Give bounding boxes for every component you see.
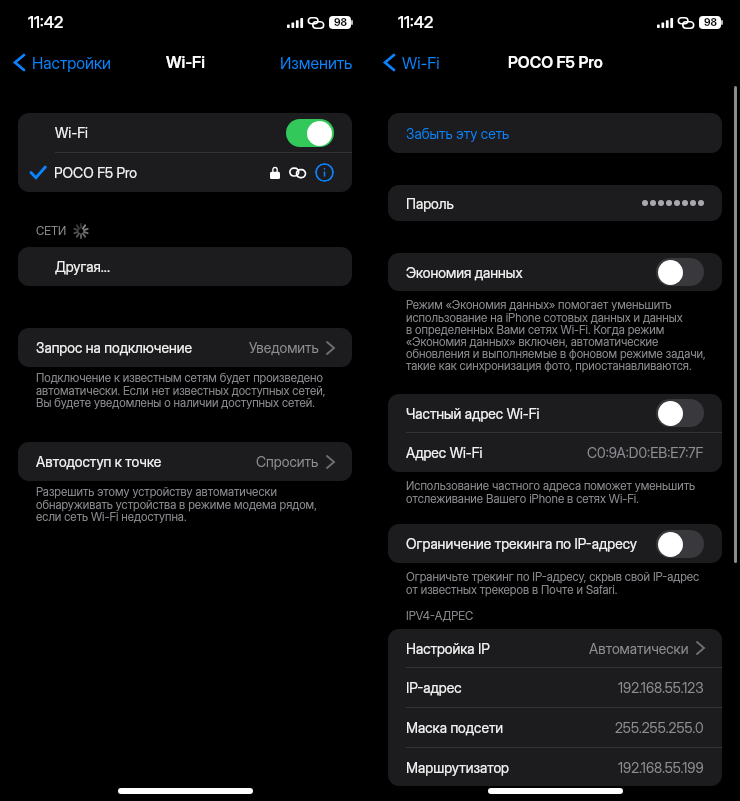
staticText: Частный адрес Wi-Fi bbox=[406, 405, 540, 422]
button[interactable]: Пароль bbox=[388, 185, 722, 221]
staticText: Ограничьте трекинг по IP-адресу, скрыв с… bbox=[406, 570, 718, 596]
staticText: Wi-Fi bbox=[55, 124, 88, 141]
button[interactable]: Маска подсети bbox=[388, 708, 722, 747]
button[interactable]: Wi-Fi bbox=[18, 113, 352, 152]
staticText: Подключение к известным сетям будет прои… bbox=[36, 371, 348, 409]
staticText: Запрос на подключение bbox=[36, 339, 192, 356]
staticText: Wi-Fi bbox=[402, 53, 440, 72]
button[interactable]: Toggle off bbox=[656, 530, 704, 558]
staticText: 192.168.55.199 bbox=[618, 759, 704, 776]
staticText: Маска подсети bbox=[406, 719, 504, 736]
button[interactable]: Изменить bbox=[280, 53, 370, 72]
staticText: 192.168.55.123 bbox=[618, 679, 704, 696]
staticText: Wi-Fi bbox=[166, 53, 205, 72]
staticText: 11:42 bbox=[28, 12, 64, 32]
button[interactable]: Toggle off bbox=[656, 399, 704, 427]
staticText: POCO F5 Pro bbox=[508, 53, 603, 72]
staticText: Настройка IP bbox=[406, 640, 490, 657]
button[interactable]: IP-адрес bbox=[388, 668, 722, 707]
staticText: 11:42 bbox=[398, 12, 434, 32]
button[interactable]: Адрес Wi-Fi bbox=[388, 433, 722, 472]
button[interactable]: Ограничение трекинга по IP-адресу bbox=[388, 524, 722, 563]
button[interactable]: Запрос на подключение bbox=[18, 328, 352, 367]
button[interactable]: Частный адрес Wi-Fi bbox=[388, 394, 722, 432]
staticText: Забыть эту сеть bbox=[406, 125, 510, 142]
staticText: 98 bbox=[704, 16, 717, 29]
staticText: Другая... bbox=[55, 258, 111, 275]
staticText: Использование частного адреса поможет ум… bbox=[406, 479, 718, 505]
staticText: Настройки bbox=[32, 53, 111, 72]
button[interactable]: Другая... bbox=[18, 247, 352, 286]
button[interactable]: Toggle off bbox=[656, 258, 704, 286]
button[interactable]: Экономия данных bbox=[388, 253, 722, 291]
staticText: Пароль bbox=[406, 195, 454, 212]
staticText: 255.255.255.0 bbox=[615, 719, 704, 736]
staticText: Разрешить этому устройству автоматически… bbox=[36, 485, 348, 523]
staticText: IP-адрес bbox=[406, 679, 462, 696]
staticText: Уведомить bbox=[249, 339, 319, 356]
staticText: C0:9A:D0:EB:E7:7F bbox=[587, 444, 704, 461]
staticText: Адрес Wi-Fi bbox=[406, 444, 483, 461]
staticText: POCO F5 Pro bbox=[54, 164, 137, 181]
button[interactable]: POCO F5 Pro bbox=[18, 153, 352, 192]
staticText: Автодоступ к точке bbox=[36, 453, 162, 470]
staticText: Экономия данных bbox=[406, 264, 523, 281]
button[interactable]: Автодоступ к точке bbox=[18, 442, 352, 481]
button[interactable]: Забыть эту сеть bbox=[388, 113, 722, 153]
staticText: Спросить bbox=[256, 453, 319, 470]
button[interactable]: Toggle on bbox=[286, 119, 334, 147]
staticText: Режим «Экономия данных» помогает уменьши… bbox=[406, 298, 718, 372]
staticText: СЕТИ bbox=[36, 224, 67, 238]
button[interactable]: Настройка IP bbox=[388, 629, 722, 667]
staticText: 98 bbox=[334, 16, 347, 29]
staticText: Ограничение трекинга по IP-адресу bbox=[406, 535, 637, 552]
button[interactable]: Информация bbox=[315, 163, 334, 182]
staticText: Маршрутизатор bbox=[406, 759, 510, 776]
staticText: IPV4-АДРЕС bbox=[406, 609, 474, 623]
button[interactable]: Wi-Fi bbox=[370, 53, 448, 72]
staticText: Автоматически bbox=[589, 640, 689, 657]
button[interactable]: Настройки bbox=[0, 53, 119, 72]
button[interactable]: Маршрутизатор bbox=[388, 748, 722, 786]
